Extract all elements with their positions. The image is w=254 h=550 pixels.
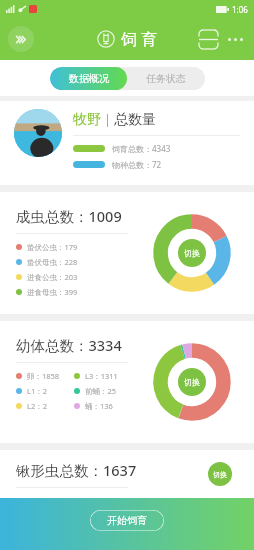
button[interactable]: Expand bbox=[8, 26, 34, 52]
staticText: 幼体总数：3334 bbox=[16, 335, 122, 355]
button[interactable]: 切换 bbox=[178, 239, 206, 267]
staticText: 锹形虫总数：1637 bbox=[16, 460, 137, 480]
staticText: 蛰伏母虫：228 bbox=[27, 257, 78, 267]
button[interactable]: More options bbox=[222, 26, 248, 52]
staticText: 1:06 bbox=[232, 4, 248, 15]
staticText: 切换 bbox=[213, 470, 227, 479]
staticText: 进食母虫：399 bbox=[27, 287, 78, 297]
staticText: 卵：1858 bbox=[27, 371, 60, 381]
staticText: 物种总数：72 bbox=[112, 159, 162, 170]
button[interactable]: Scan bbox=[194, 25, 222, 53]
staticText: 前蛹：25 bbox=[85, 386, 117, 396]
staticText: 饲育总数：4343 bbox=[112, 143, 171, 154]
staticText: 蛰伏公虫：179 bbox=[27, 242, 78, 252]
staticText: 牧野 bbox=[73, 111, 101, 129]
button[interactable]: 切换 bbox=[178, 368, 206, 396]
button[interactable]: Profile avatar bbox=[14, 109, 62, 157]
button[interactable]: 任务状态 bbox=[127, 67, 205, 90]
staticText: 任务状态 bbox=[146, 72, 186, 85]
button[interactable]: 数据概况 bbox=[50, 67, 127, 90]
staticText: 进食公虫：203 bbox=[27, 272, 78, 282]
button[interactable]: 切换 bbox=[208, 462, 232, 486]
staticText: 饲 育 bbox=[121, 28, 158, 50]
staticText: L3：1311 bbox=[85, 371, 118, 381]
button[interactable]: 开始饲育 bbox=[90, 510, 164, 531]
staticText: 蛹：136 bbox=[85, 401, 113, 411]
staticText: L2：2 bbox=[27, 401, 48, 411]
staticText: 切换 bbox=[184, 377, 200, 387]
staticText: 数据概况 bbox=[69, 72, 109, 85]
staticText: 开始饲育 bbox=[107, 514, 147, 527]
staticText: 成虫总数：1009 bbox=[16, 206, 122, 226]
staticText: L1：2 bbox=[27, 386, 48, 396]
staticText: 切换 bbox=[184, 248, 200, 258]
staticText: 总数量 bbox=[114, 111, 156, 129]
